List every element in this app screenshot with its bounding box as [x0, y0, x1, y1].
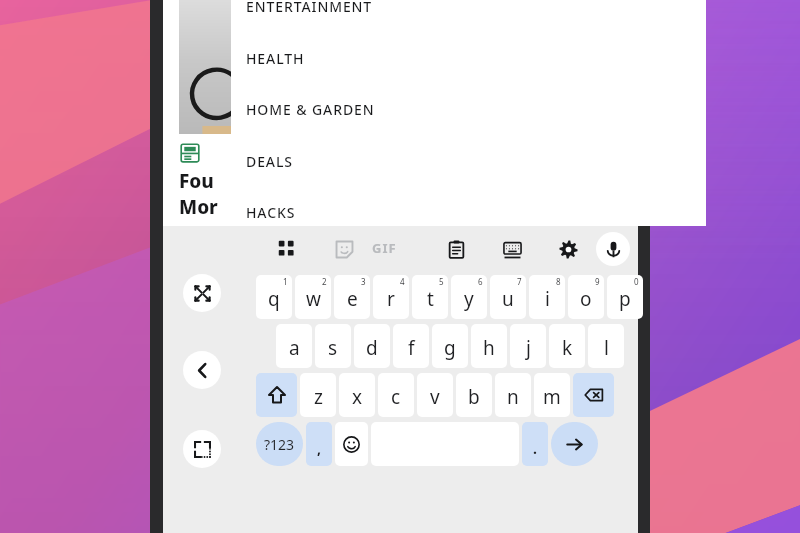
button[interactable]: m — [534, 373, 570, 417]
staticText: e — [347, 286, 358, 312]
button[interactable]: i — [529, 275, 565, 319]
button[interactable]: w — [295, 275, 331, 319]
staticText: 8 — [556, 276, 561, 287]
button[interactable]: Voice input — [596, 232, 630, 266]
button[interactable]: c — [378, 373, 414, 417]
staticText: 6 — [478, 276, 483, 287]
staticText: 5 — [439, 276, 444, 287]
staticText: 7 — [517, 276, 522, 287]
button[interactable]: HOME & GARDEN — [231, 94, 706, 124]
staticText: k — [562, 335, 573, 361]
staticText: 0 — [634, 276, 639, 287]
button[interactable]: k — [549, 324, 585, 368]
staticText: q — [268, 286, 280, 312]
staticText: o — [580, 286, 592, 312]
button[interactable]: p — [607, 275, 643, 319]
staticText: 3 — [361, 276, 366, 287]
staticText: c — [391, 384, 401, 410]
staticText: HACKS — [246, 203, 296, 222]
staticText: z — [314, 384, 323, 410]
button[interactable]: z — [300, 373, 336, 417]
staticText: l — [604, 335, 609, 361]
button[interactable]: s — [315, 324, 351, 368]
button[interactable]: One handed mode — [183, 430, 221, 468]
staticText: ENTERTAINMENT — [246, 0, 373, 16]
button[interactable]: Symbols — [259, 226, 316, 272]
staticText: d — [366, 335, 378, 361]
staticText: . — [533, 439, 537, 458]
button[interactable]: ?123 — [256, 422, 303, 466]
button[interactable]: e — [334, 275, 370, 319]
button[interactable]: n — [495, 373, 531, 417]
button[interactable]: , — [306, 422, 332, 466]
staticText: y — [464, 286, 474, 312]
button[interactable]: Shift — [256, 373, 297, 417]
staticText: j — [526, 335, 531, 361]
button[interactable]: Previous — [183, 351, 221, 389]
button[interactable]: x — [339, 373, 375, 417]
button[interactable]: v — [417, 373, 453, 417]
staticText: 1 — [283, 276, 288, 287]
staticText: Mor — [179, 194, 218, 220]
staticText: t — [427, 286, 434, 312]
staticText: GIF — [372, 239, 397, 257]
staticText: n — [507, 384, 519, 410]
button[interactable]: h — [471, 324, 507, 368]
staticText: u — [502, 286, 514, 312]
staticText: 9 — [595, 276, 600, 287]
button[interactable]: l — [588, 324, 624, 368]
button[interactable]: Clipboard — [428, 226, 484, 272]
staticText: x — [352, 384, 363, 410]
staticText: h — [483, 335, 495, 361]
button[interactable]: Keyboard layout — [484, 226, 540, 272]
button[interactable]: g — [432, 324, 468, 368]
staticText: 4 — [400, 276, 405, 287]
button[interactable]: Resize keyboard — [183, 274, 221, 312]
staticText: i — [545, 286, 550, 312]
staticText: DEALS — [246, 152, 293, 171]
button[interactable]: HEALTH — [231, 43, 706, 73]
button[interactable]: Enter — [551, 422, 598, 466]
button[interactable]: q — [256, 275, 292, 319]
button[interactable]: Settings — [540, 226, 596, 272]
staticText: b — [468, 384, 480, 410]
staticText: v — [430, 384, 440, 410]
staticText: 2 — [322, 276, 327, 287]
staticText: p — [619, 286, 631, 312]
button[interactable]: GIF — [372, 226, 428, 272]
button[interactable]: r — [373, 275, 409, 319]
button[interactable]: HACKS — [231, 197, 706, 227]
button[interactable]: y — [451, 275, 487, 319]
button[interactable]: d — [354, 324, 390, 368]
staticText: m — [543, 384, 561, 410]
staticText: s — [328, 335, 338, 361]
button[interactable]: j — [510, 324, 546, 368]
staticText: a — [289, 335, 300, 361]
button[interactable]: DEALS — [231, 146, 706, 176]
staticText: r — [387, 286, 395, 312]
staticText: , — [317, 439, 321, 458]
button[interactable]: Emoji — [335, 422, 368, 466]
staticText: Fou — [179, 168, 214, 194]
button[interactable]: u — [490, 275, 526, 319]
staticText: HEALTH — [246, 49, 305, 68]
button[interactable]: a — [276, 324, 312, 368]
button[interactable]: o — [568, 275, 604, 319]
button[interactable]: b — [456, 373, 492, 417]
button[interactable]: Stickers — [316, 226, 372, 272]
staticText: w — [306, 286, 321, 312]
button[interactable]: Backspace — [573, 373, 614, 417]
staticText: f — [408, 335, 415, 361]
staticText: ?123 — [264, 435, 295, 454]
button[interactable]: t — [412, 275, 448, 319]
button[interactable]: . — [522, 422, 548, 466]
button[interactable]: f — [393, 324, 429, 368]
staticText: HOME & GARDEN — [246, 100, 375, 119]
staticText: g — [444, 335, 456, 361]
button[interactable]: ENTERTAINMENT — [231, 0, 706, 21]
